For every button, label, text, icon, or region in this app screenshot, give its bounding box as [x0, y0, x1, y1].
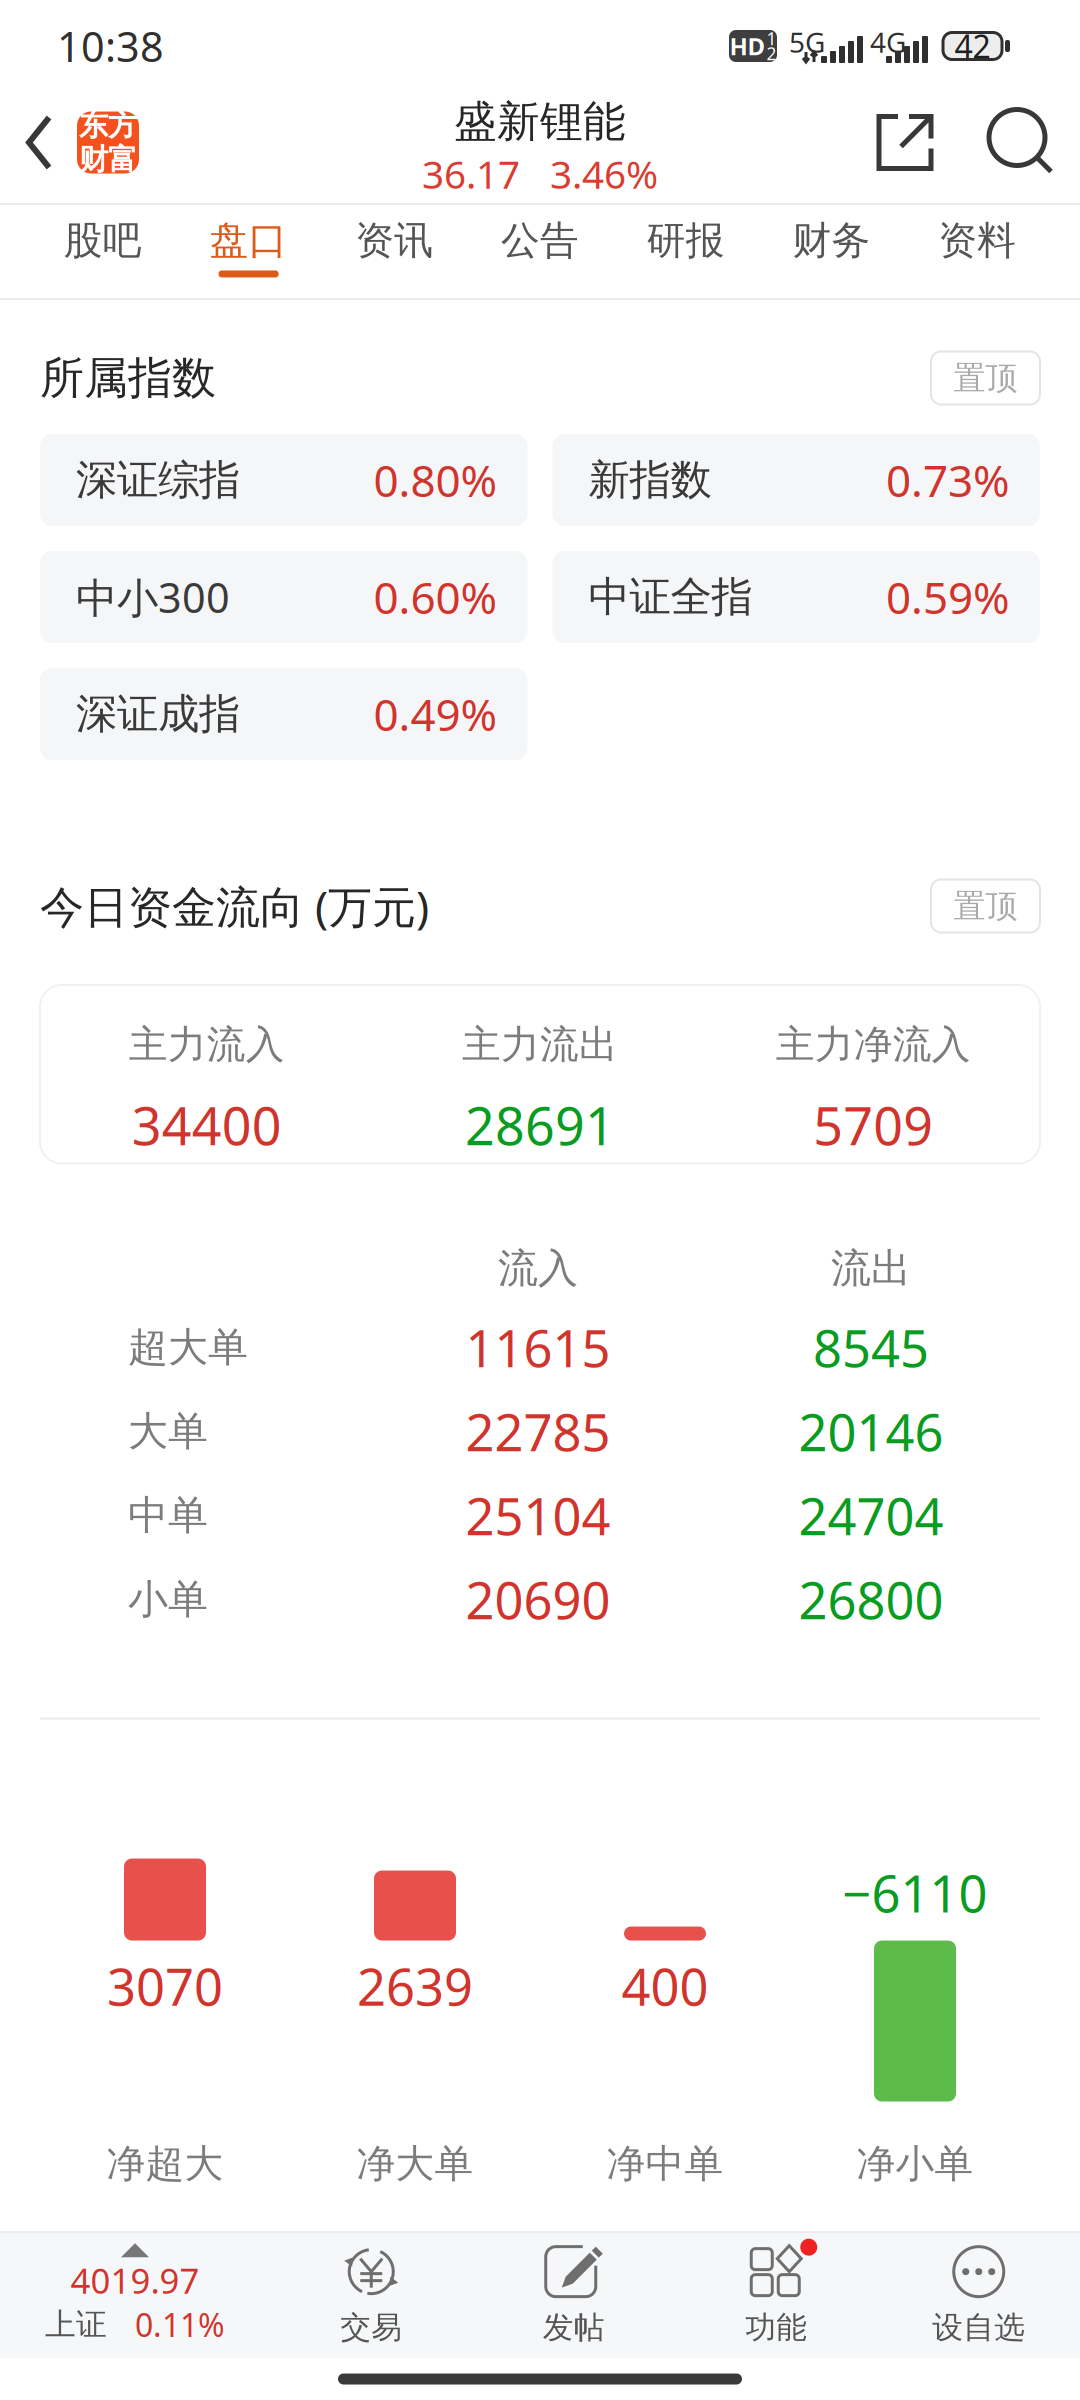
staticText: 主力净流入: [776, 1021, 971, 1068]
button[interactable]: 资讯: [321, 203, 467, 300]
staticText: 流入: [498, 1244, 578, 1293]
staticText: 28691: [465, 1090, 615, 1160]
staticText: 公告: [501, 217, 579, 264]
staticText: 24704: [798, 1482, 943, 1549]
button[interactable]: 交易: [270, 2231, 472, 2358]
staticText: 11615: [465, 1314, 610, 1381]
button[interactable]: 中小300: [40, 551, 527, 643]
staticText: 小单: [128, 1575, 208, 1624]
staticText: 36.17: [422, 148, 520, 199]
staticText: 净中单: [606, 2140, 723, 2188]
staticText: 流出: [831, 1244, 911, 1293]
button[interactable]: 置顶: [931, 879, 1040, 932]
staticText: 22785: [465, 1398, 610, 1465]
staticText: 置顶: [953, 358, 1017, 398]
button[interactable]: 设自选: [877, 2231, 1080, 2358]
button[interactable]: 研报: [613, 203, 759, 300]
staticText: 盛新锂能: [454, 96, 626, 148]
staticText: 2639: [357, 1952, 473, 2020]
staticText: 10:38: [57, 19, 164, 73]
button[interactable]: 深证成指: [40, 668, 527, 760]
staticText: 财富: [79, 141, 137, 177]
staticText: 股吧: [64, 217, 142, 264]
staticText: 深证成指: [76, 689, 240, 739]
staticText: 交易: [340, 2309, 402, 2346]
staticText: 功能: [745, 2309, 807, 2346]
button[interactable]: 公告: [467, 203, 613, 300]
staticText: 东方: [79, 107, 137, 143]
staticText: 20146: [798, 1398, 943, 1465]
staticText: 0.49%: [373, 685, 497, 743]
staticText: 主力流出: [462, 1021, 618, 1068]
staticText: 大单: [128, 1407, 208, 1456]
staticText: 4G: [870, 23, 906, 61]
staticText: 0.80%: [373, 451, 497, 509]
staticText: 发帖: [543, 2309, 605, 2346]
button[interactable]: 功能: [675, 2231, 877, 2358]
button[interactable]: 返回: [8, 104, 70, 180]
staticText: 新指数: [588, 455, 711, 505]
staticText: 所属指数: [40, 351, 216, 405]
button[interactable]: 置顶: [931, 351, 1040, 404]
button[interactable]: 新指数: [552, 434, 1040, 526]
staticText: 1: [766, 27, 776, 50]
button[interactable]: 盘口: [176, 203, 321, 300]
staticText: 0.59%: [886, 568, 1010, 626]
staticText: 3070: [107, 1952, 223, 2020]
staticText: 25104: [465, 1482, 610, 1549]
staticText: 0.73%: [886, 451, 1010, 509]
button[interactable]: 财务: [759, 203, 904, 300]
staticText: HD: [729, 30, 765, 62]
button[interactable]: 资料: [904, 203, 1050, 300]
staticText: 2: [766, 42, 776, 65]
staticText: 财务: [792, 217, 870, 264]
button[interactable]: 东方财富: [77, 111, 139, 173]
staticText: 净大单: [356, 2140, 473, 2188]
staticText: 主力流入: [129, 1021, 285, 1068]
staticText: 3.46%: [550, 148, 658, 199]
staticText: 5G: [789, 23, 825, 61]
staticText: 设自选: [932, 2309, 1025, 2346]
staticText: 8545: [813, 1314, 929, 1381]
staticText: 净超大: [106, 2140, 223, 2188]
staticText: 深证综指: [76, 455, 240, 505]
staticText: 4019.97: [70, 2257, 199, 2303]
button[interactable]: 股吧: [30, 203, 176, 300]
staticText: 置顶: [953, 886, 1017, 926]
staticText: 34400: [132, 1090, 282, 1160]
staticText: 资讯: [355, 217, 433, 264]
button[interactable]: 4019.97: [0, 2231, 270, 2358]
staticText: 0.11%: [135, 2303, 225, 2346]
staticText: 26800: [798, 1566, 943, 1633]
button[interactable]: 深证综指: [40, 434, 527, 526]
staticText: 0.60%: [373, 568, 497, 626]
staticText: 中单: [128, 1491, 208, 1540]
staticText: 20690: [465, 1566, 610, 1633]
staticText: 中小300: [76, 570, 230, 624]
staticText: −6110: [842, 1859, 987, 1927]
button[interactable]: 中证全指: [552, 551, 1040, 643]
staticText: 上证: [45, 2306, 107, 2343]
button[interactable]: 分享: [867, 104, 943, 180]
staticText: 超大单: [128, 1323, 248, 1372]
staticText: 净小单: [856, 2140, 973, 2188]
staticText: 400: [621, 1952, 708, 2020]
button[interactable]: 搜索: [984, 104, 1060, 180]
staticText: 今日资金流向 (万元): [40, 877, 429, 935]
staticText: 5709: [813, 1090, 933, 1160]
staticText: 研报: [647, 217, 725, 264]
staticText: 盘口: [210, 217, 288, 264]
staticText: 42: [954, 25, 990, 67]
button[interactable]: 发帖: [472, 2231, 675, 2358]
staticText: 中证全指: [588, 572, 752, 622]
staticText: 资料: [938, 217, 1016, 264]
